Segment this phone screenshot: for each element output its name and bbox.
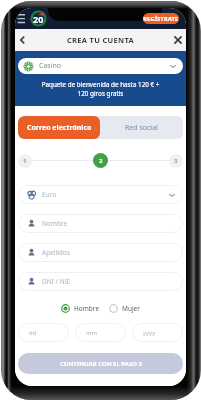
staticText: Hombre (74, 304, 100, 313)
staticText: 1 (23, 157, 27, 165)
button[interactable]: REGÍSTRATE (143, 13, 179, 24)
button[interactable]: dd (18, 323, 69, 342)
button[interactable]: Euro (18, 185, 183, 204)
staticText: 2 (99, 157, 103, 165)
button[interactable]: Menu (16, 8, 27, 29)
staticText: Mujer (122, 304, 140, 313)
button[interactable]: 2 (93, 153, 108, 168)
button[interactable]: DNI / NIE (18, 272, 183, 291)
button[interactable]: 3 (169, 154, 183, 168)
staticText: 3 (174, 157, 178, 165)
staticText: Red social (125, 123, 158, 133)
staticText: CREA TU CUENTA (67, 35, 134, 45)
staticText: Euro (42, 190, 57, 199)
staticText: dd (29, 329, 37, 337)
staticText: REGÍSTRATE (143, 15, 179, 23)
staticText: CONTINUAR CON EL PASO 3 (60, 360, 142, 368)
button[interactable]: mm (75, 323, 126, 342)
button[interactable]: Back (15, 29, 31, 51)
button[interactable]: yyyy (132, 323, 183, 342)
button[interactable]: Mujer (109, 302, 140, 315)
staticText: Correo electrónico (27, 123, 92, 133)
button[interactable]: Correo electrónico (18, 116, 100, 139)
staticText: Apellidos (42, 248, 70, 257)
staticText: Casino (39, 61, 62, 71)
staticText: yyyy (143, 329, 156, 337)
button[interactable]: Casino (18, 58, 183, 74)
button[interactable]: CONTINUAR CON EL PASO 3 (18, 353, 183, 374)
button[interactable]: Red social (100, 116, 183, 139)
button[interactable]: 1 (18, 154, 32, 168)
button[interactable]: Hombre (61, 302, 100, 315)
button[interactable]: Nombre (18, 214, 183, 233)
staticText: Paquete de bienvenida de hasta 120 € + 1… (15, 80, 186, 98)
staticText: Nombre (42, 219, 68, 228)
staticText: mm (86, 329, 98, 337)
button[interactable]: Close (170, 29, 186, 51)
staticText: DNI / NIE (42, 277, 71, 286)
staticText: 20 (33, 13, 44, 25)
button[interactable]: Apellidos (18, 243, 183, 262)
